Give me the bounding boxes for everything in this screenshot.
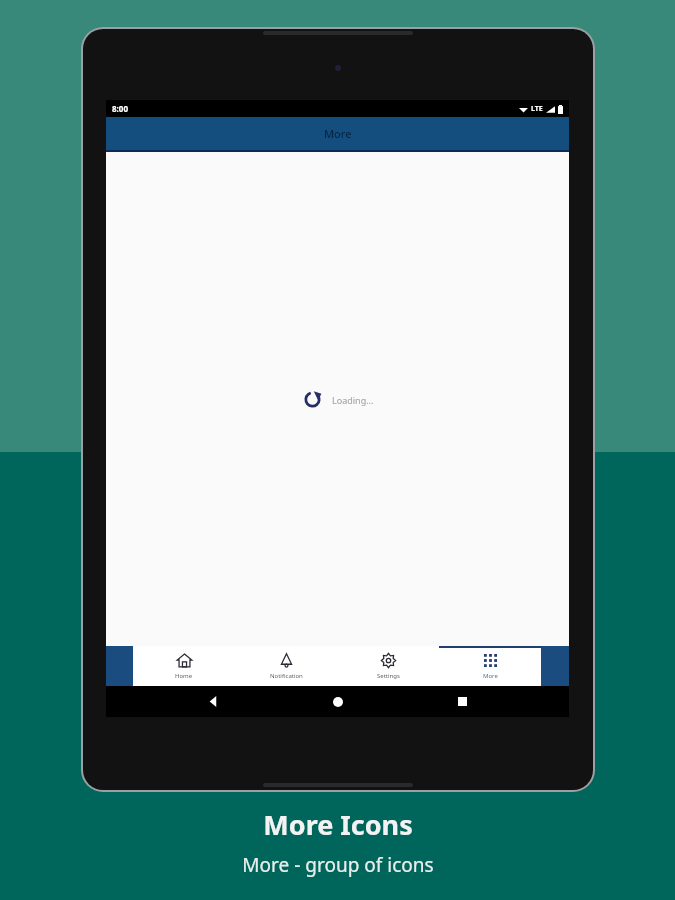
staticText: Loading...: [332, 394, 374, 406]
button[interactable]: Back: [196, 686, 230, 717]
staticText: Notification: [270, 672, 303, 680]
other: More: [482, 652, 499, 669]
staticText: Home: [175, 672, 193, 680]
button[interactable]: Notification: [235, 646, 337, 686]
other: Home: [176, 652, 193, 669]
staticText: More Icons: [263, 806, 413, 843]
staticText: Settings: [377, 672, 400, 680]
other: Notification: [278, 652, 295, 669]
button[interactable]: Settings: [337, 646, 439, 686]
staticText: More: [324, 126, 352, 141]
button[interactable]: More: [439, 646, 541, 686]
button[interactable]: Home: [133, 646, 235, 686]
button[interactable]: Recents: [445, 686, 479, 717]
staticText: More - group of icons: [242, 852, 434, 878]
staticText: 8:00: [112, 103, 128, 114]
staticText: More: [483, 672, 498, 680]
button[interactable]: Home: [321, 686, 355, 717]
staticText: LTE: [531, 104, 543, 114]
other: Settings: [380, 652, 397, 669]
